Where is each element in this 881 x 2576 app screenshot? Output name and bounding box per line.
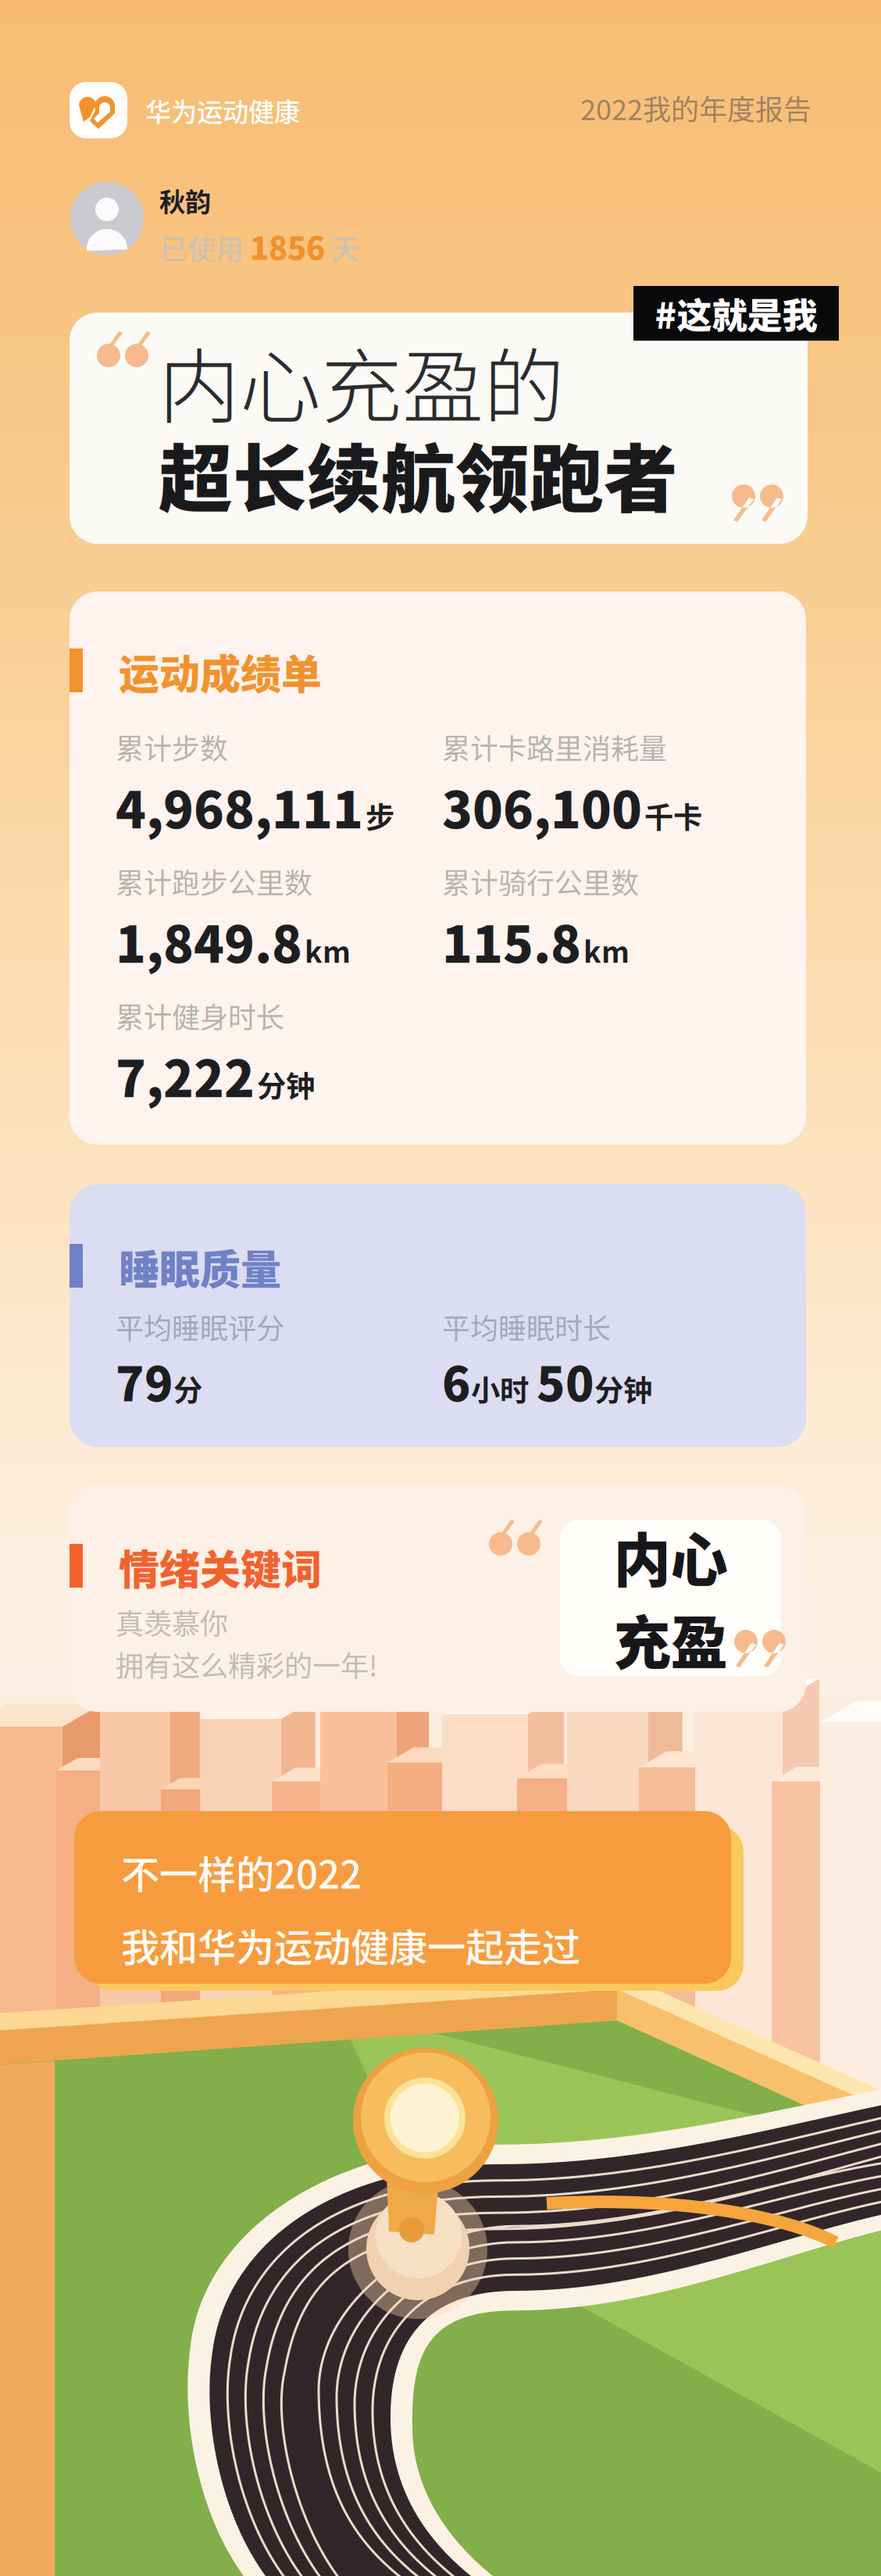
staticText: 306,100 xyxy=(442,770,642,843)
staticText: 1856 xyxy=(250,223,325,269)
staticText: km xyxy=(305,929,351,971)
staticText: 4,968,111 xyxy=(116,770,363,843)
staticText: 超长续航领跑者 xyxy=(159,420,678,527)
staticText: 睡眠质量 xyxy=(119,1238,281,1296)
staticText: 累计骑行公里数 xyxy=(442,861,639,902)
staticText: 情绪关键词 xyxy=(119,1538,322,1596)
staticText: 7,222 xyxy=(116,1039,255,1112)
staticText: 115.8 xyxy=(442,905,581,977)
staticText: 平均睡眠时长 xyxy=(442,1306,611,1347)
staticText: 我和华为运动健康一起走过 xyxy=(121,1917,580,1973)
staticText: 真羡慕你 xyxy=(116,1602,228,1642)
staticText: km xyxy=(583,929,630,971)
staticText: 小时 xyxy=(471,1368,529,1410)
staticText: 充盈 xyxy=(613,1598,728,1681)
staticText: 50 xyxy=(537,1347,594,1415)
staticText: 79 xyxy=(116,1347,173,1415)
staticText: 天 xyxy=(325,227,359,268)
staticText: 平均睡眠评分 xyxy=(116,1306,284,1347)
staticText: 累计卡路里消耗量 xyxy=(442,727,667,767)
staticText: 千卡 xyxy=(644,795,702,837)
button[interactable]: #这就是我 xyxy=(633,286,839,341)
staticText: 运动成绩单 xyxy=(119,642,322,701)
staticText: 累计跑步公里数 xyxy=(116,861,312,902)
staticText: 已使用 xyxy=(159,227,250,268)
staticText: 不一样的2022 xyxy=(121,1844,362,1900)
staticText: 华为运动健康 xyxy=(145,91,300,129)
staticText: 分钟 xyxy=(594,1368,652,1410)
staticText: 拥有这么精彩的一年! xyxy=(116,1644,378,1685)
staticText: 内心 xyxy=(613,1515,728,1598)
button[interactable]: 不一样的2022 xyxy=(74,1811,731,1984)
staticText: 分钟 xyxy=(257,1063,315,1106)
staticText: 内心充盈的 xyxy=(159,323,565,440)
staticText: 分 xyxy=(173,1368,202,1410)
staticText: 1,849.8 xyxy=(116,905,302,977)
staticText: 累计步数 xyxy=(116,727,228,767)
staticText: 累计健身时长 xyxy=(116,995,284,1036)
staticText: 秋韵 xyxy=(159,181,211,219)
staticText: 步 xyxy=(366,795,394,837)
staticText: 6 xyxy=(442,1347,471,1415)
staticText: #这就是我 xyxy=(655,288,817,339)
staticText: 2022我的年度报告 xyxy=(580,88,811,128)
